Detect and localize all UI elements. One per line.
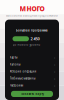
staticText: Настройки xyxy=(9,84,23,87)
staticText: миллионы выгодных предложений xyxy=(6,14,58,17)
staticText: › xyxy=(54,76,55,81)
staticText: Бонусная программа xyxy=(16,29,48,32)
staticText: Купоны xyxy=(9,63,20,66)
staticText: Любимые магазины xyxy=(9,77,35,80)
button[interactable]: Карты xyxy=(5,54,59,61)
button[interactable]: Любимые магазины xyxy=(5,75,59,82)
staticText: › xyxy=(54,62,55,67)
staticText: › xyxy=(54,69,55,74)
staticText: МНОГО xyxy=(19,4,44,13)
button[interactable]: Настройки xyxy=(5,82,59,89)
staticText: Показать карту xyxy=(20,92,43,96)
staticText: › xyxy=(54,55,55,60)
staticText: до нового уровня xyxy=(12,43,40,46)
staticText: Карты xyxy=(9,56,17,59)
button[interactable]: История операций xyxy=(5,68,59,75)
staticText: 2 450 xyxy=(30,36,39,41)
staticText: › xyxy=(54,83,55,88)
staticText: История операций xyxy=(9,70,36,73)
button[interactable]: Показать карту xyxy=(11,91,53,97)
button[interactable]: Купоны xyxy=(5,61,59,68)
